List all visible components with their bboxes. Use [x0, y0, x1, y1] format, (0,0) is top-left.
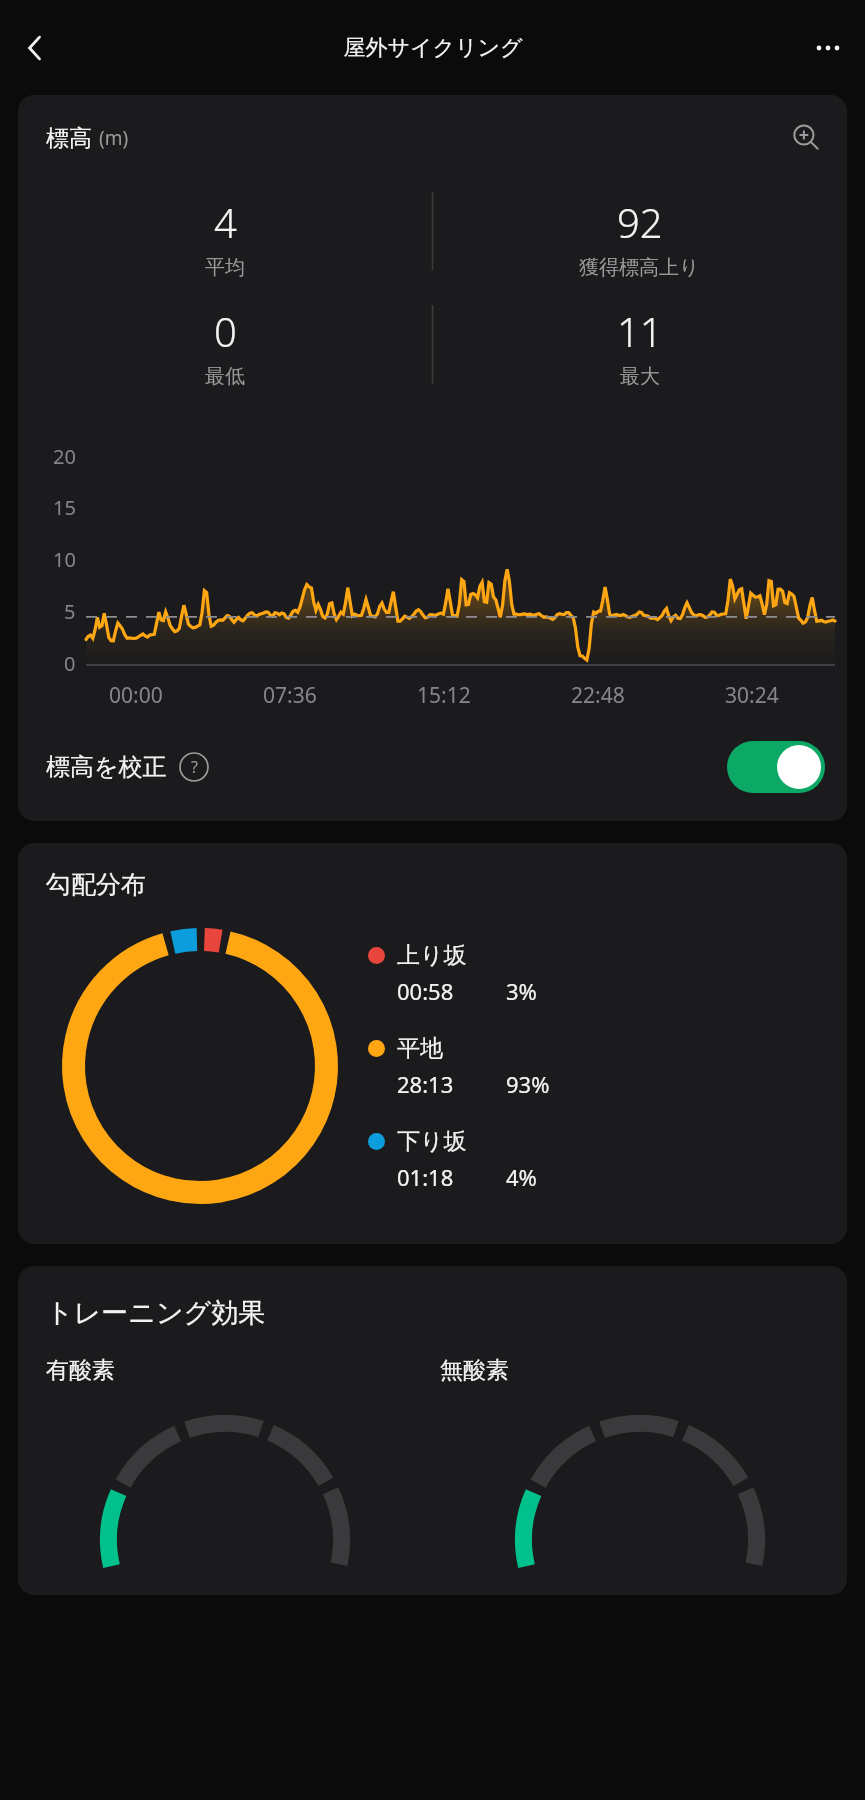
- staticText: 92: [617, 195, 663, 249]
- staticText: 4: [214, 195, 237, 249]
- staticText: 20: [53, 443, 76, 470]
- staticText: 4%: [506, 1162, 537, 1192]
- button[interactable]: Back: [6, 19, 64, 77]
- button[interactable]: More options: [799, 19, 857, 77]
- button[interactable]: Expand chart: [783, 115, 829, 161]
- button[interactable]: 標高を校正: [46, 741, 825, 793]
- staticText: 30:24: [725, 681, 779, 710]
- staticText: トレーニング効果: [46, 1296, 266, 1330]
- button[interactable]: 上り坂: [368, 941, 847, 1006]
- staticText: 0: [214, 304, 237, 358]
- staticText: 00:00: [109, 681, 163, 710]
- staticText: 5: [64, 598, 76, 625]
- staticText: 3%: [506, 976, 537, 1006]
- staticText: 11: [617, 304, 663, 358]
- staticText: 28:13: [397, 1069, 454, 1099]
- staticText: 平均: [205, 255, 245, 280]
- staticText: 10: [53, 546, 76, 573]
- staticText: 下り坂: [397, 1127, 467, 1156]
- staticText: 平地: [397, 1034, 443, 1063]
- staticText: 標高: [46, 124, 92, 153]
- staticText: 最大: [620, 364, 660, 389]
- staticText: 標高を校正: [46, 752, 167, 782]
- staticText: 有酸素: [46, 1356, 115, 1385]
- staticText: (m): [99, 125, 129, 151]
- button[interactable]: 平地: [368, 1034, 847, 1099]
- staticText: 07:36: [263, 681, 317, 710]
- staticText: 15:12: [417, 681, 471, 710]
- staticText: 屋外サイクリング: [343, 34, 523, 62]
- staticText: 00:58: [397, 976, 454, 1006]
- staticText: 獲得標高上り: [579, 255, 700, 280]
- staticText: 勾配分布: [46, 869, 146, 900]
- staticText: 93%: [506, 1069, 550, 1099]
- staticText: ?: [191, 756, 198, 778]
- staticText: 01:18: [397, 1162, 454, 1192]
- staticText: 22:48: [571, 681, 625, 710]
- staticText: 0: [64, 650, 76, 677]
- staticText: 無酸素: [440, 1356, 509, 1385]
- staticText: 上り坂: [397, 941, 467, 970]
- button[interactable]: Calibrate elevation toggle: [727, 741, 825, 793]
- staticText: 15: [53, 494, 76, 521]
- staticText: 最低: [205, 364, 245, 389]
- button[interactable]: 下り坂: [368, 1127, 847, 1192]
